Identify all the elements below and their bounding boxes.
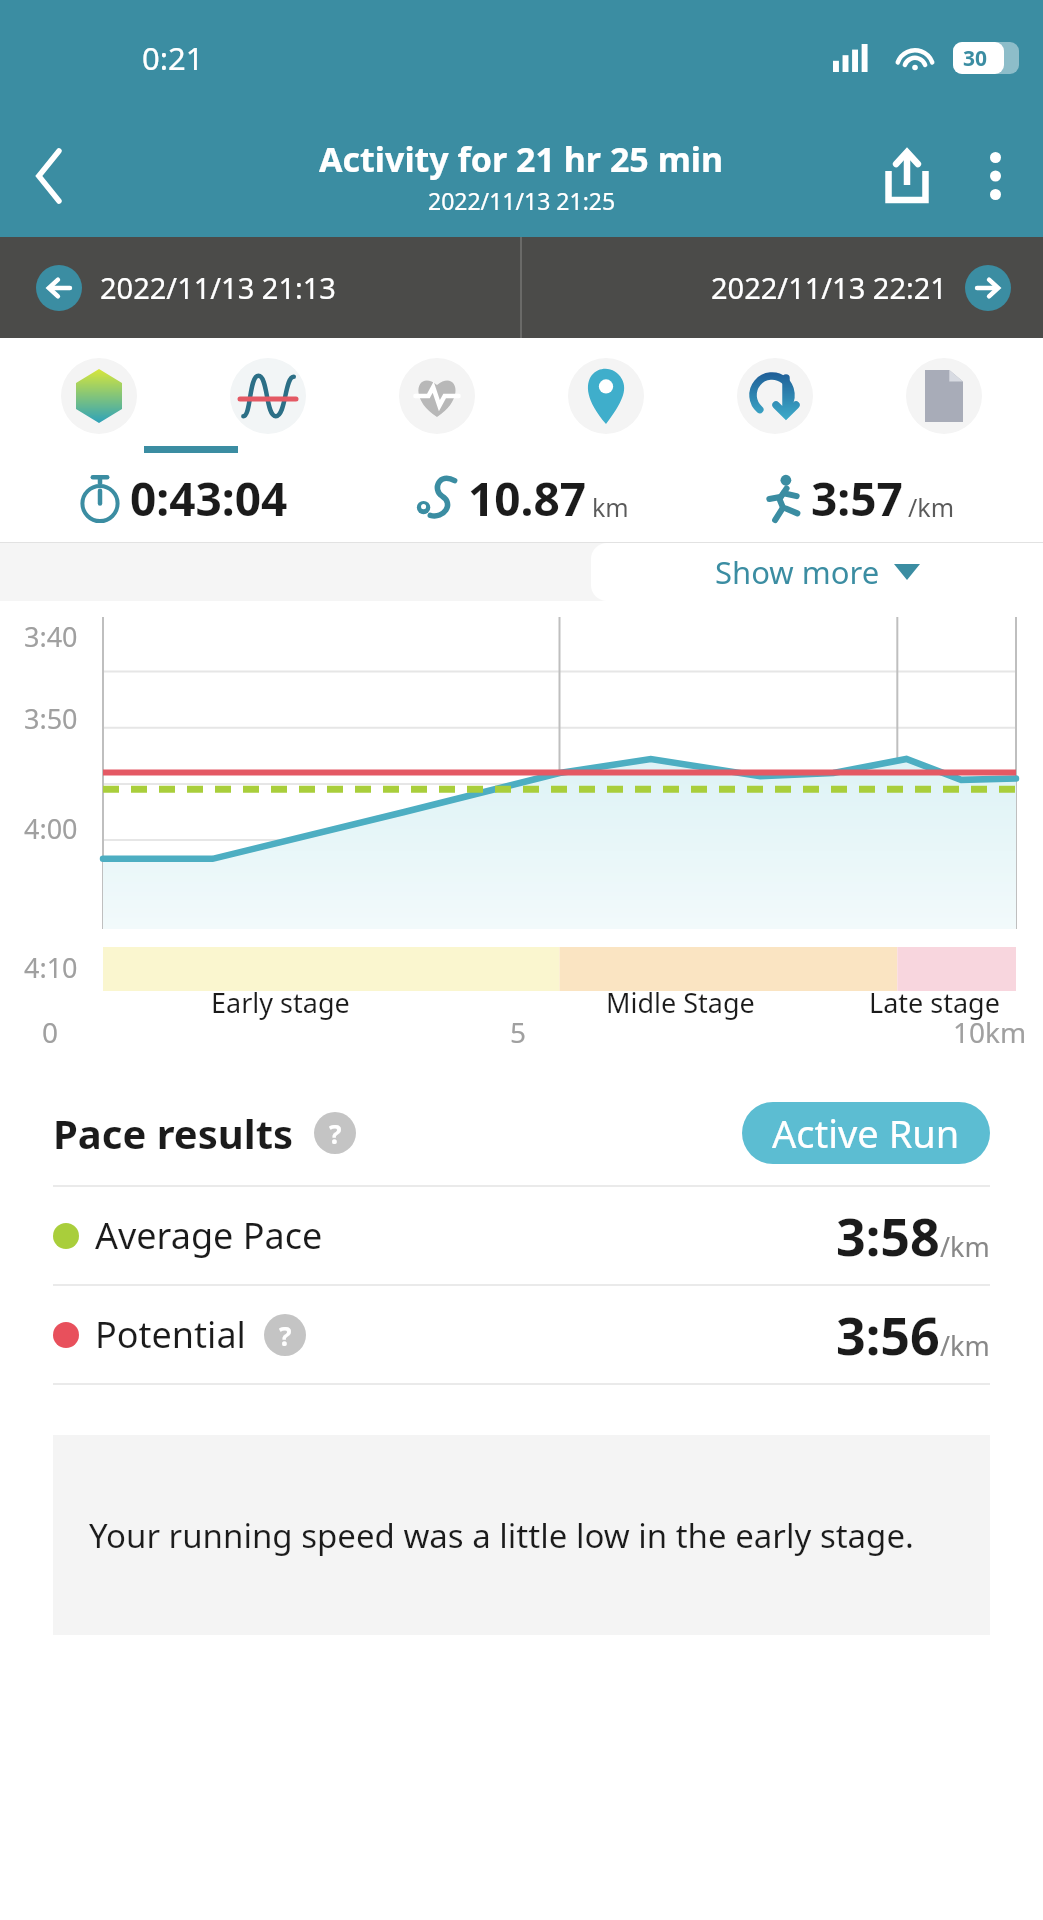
staticText: 30 [963, 44, 988, 73]
button[interactable]: Map [536, 338, 676, 453]
button[interactable]: 2022/11/13 21:13 [0, 237, 520, 338]
staticText: Show more [715, 551, 880, 593]
staticText: 2022/11/13 22:21 [711, 268, 947, 307]
staticText: Pace results [53, 1106, 294, 1160]
staticText: 3:57 [811, 467, 903, 530]
button[interactable]: Pace [198, 338, 338, 453]
staticText: km [592, 490, 629, 524]
button[interactable]: Help [314, 1112, 356, 1154]
staticText: Midle Stage [606, 984, 755, 1021]
button[interactable]: Details [874, 338, 1014, 453]
staticText: 0 [42, 1013, 59, 1051]
staticText: 0:21 [142, 37, 204, 79]
staticText: 5 [510, 1013, 527, 1051]
staticText: 2022/11/13 21:13 [100, 268, 336, 307]
staticText: Activity for 21 hr 25 min [319, 136, 724, 182]
staticText: ? [279, 1318, 292, 1353]
staticText: /km [908, 490, 955, 524]
button[interactable]: Average Pace [53, 1187, 990, 1284]
staticText: Active Run [772, 1107, 960, 1159]
staticText: 4:00 [24, 810, 78, 847]
staticText: Potential [95, 1310, 246, 1359]
button[interactable]: Share [861, 130, 953, 222]
button[interactable]: Active Run [742, 1102, 990, 1164]
staticText: 4:10 [24, 949, 78, 986]
staticText: 10km [953, 1013, 1027, 1051]
button[interactable]: More options [953, 134, 1037, 218]
staticText: Average Pace [95, 1211, 323, 1260]
staticText: 3:58 [836, 1200, 940, 1271]
button[interactable]: Laps [705, 338, 845, 453]
staticText: ? [329, 1116, 342, 1151]
button[interactable]: Potential [53, 1286, 990, 1383]
staticText: 10.87 [468, 467, 587, 530]
staticText: Late stage [869, 984, 1000, 1021]
button[interactable]: Back [14, 140, 86, 212]
button[interactable]: Heart rate [367, 338, 507, 453]
staticText: /km [940, 1228, 990, 1265]
staticText: /km [940, 1327, 990, 1364]
staticText: 3:56 [836, 1299, 940, 1370]
button[interactable]: 2022/11/13 22:21 [522, 237, 1043, 338]
staticText: 3:40 [24, 618, 78, 655]
staticText: Your running speed was a little low in t… [89, 1513, 914, 1558]
staticText: Early stage [211, 984, 350, 1021]
staticText: 3:50 [24, 700, 78, 737]
button[interactable]: Summary [29, 338, 169, 453]
staticText: 2022/11/13 21:25 [428, 185, 616, 216]
button[interactable]: Show more [591, 543, 1043, 601]
staticText: 0:43:04 [130, 467, 288, 530]
